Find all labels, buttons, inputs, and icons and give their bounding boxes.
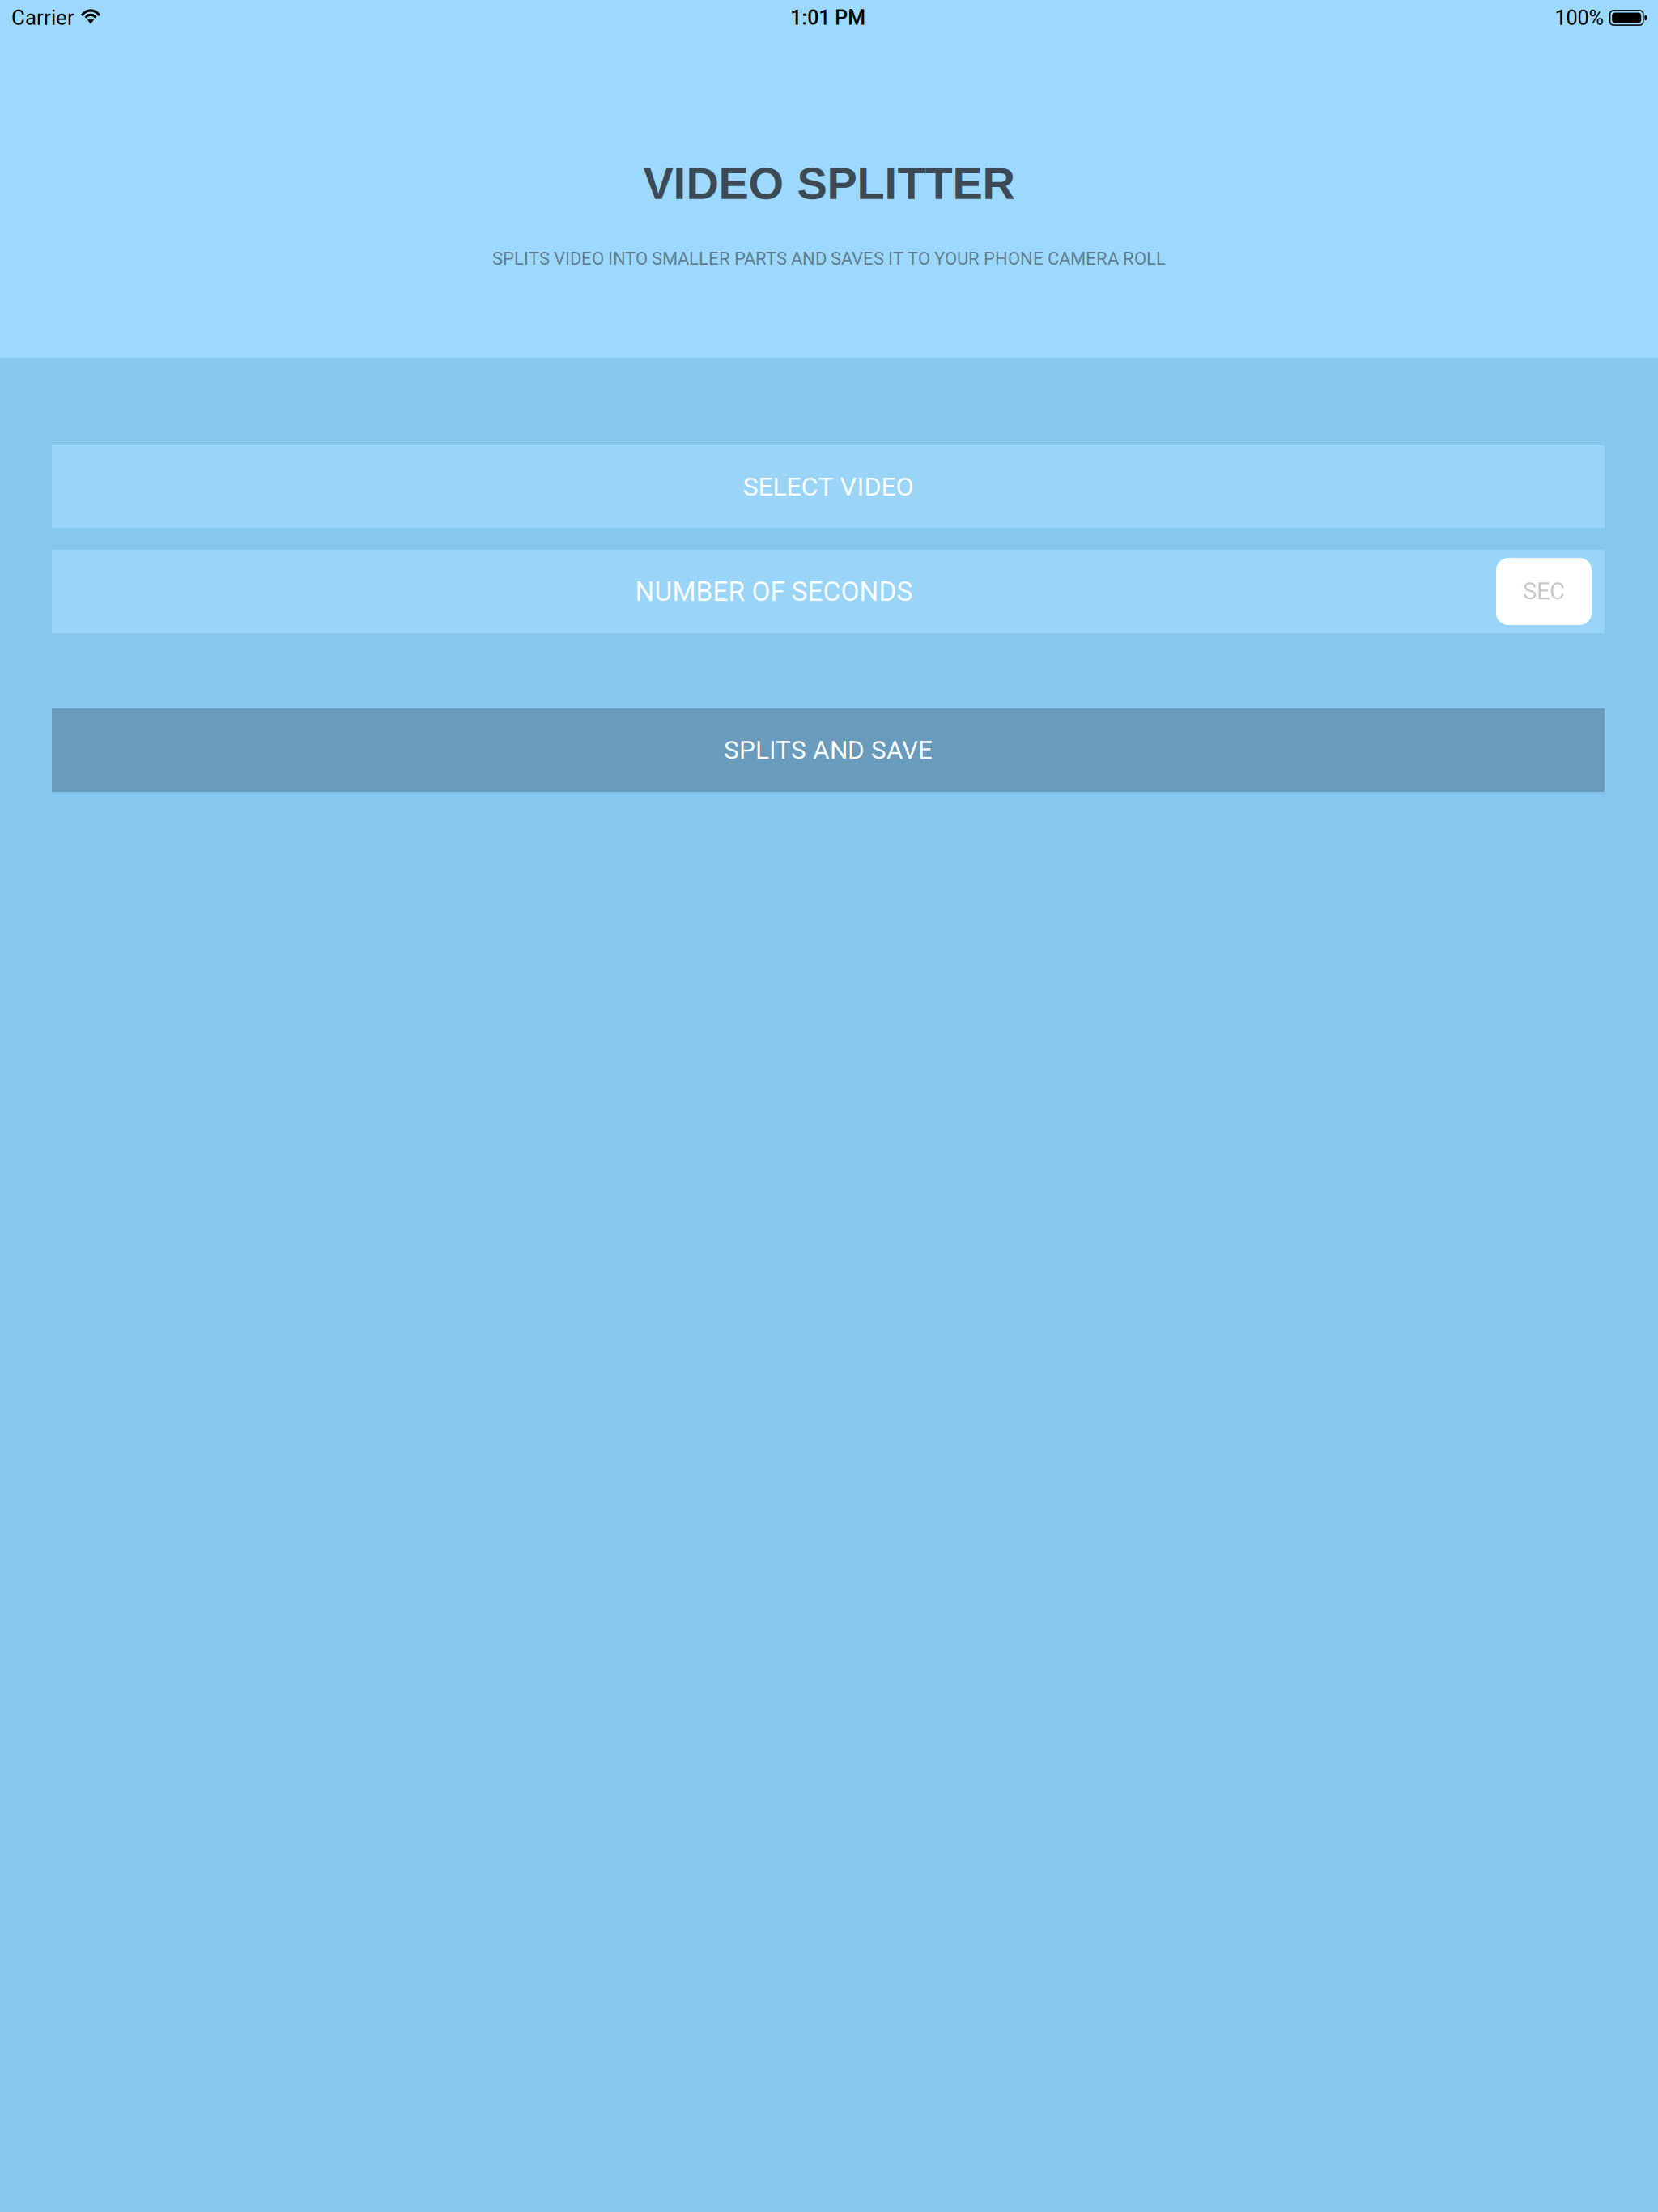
staticText: VIDEO SPLITTER: [643, 158, 1015, 209]
button[interactable]: SPLITS AND SAVE: [52, 708, 1605, 792]
staticText: SEC: [1523, 578, 1565, 605]
staticText: Carrier: [11, 6, 74, 30]
staticText: 1:01 PM: [790, 6, 866, 30]
staticText: SELECT VIDEO: [743, 471, 914, 502]
button[interactable]: SELECT VIDEO: [52, 445, 1605, 528]
staticText: 100%: [1555, 6, 1604, 30]
staticText: SPLITS VIDEO INTO SMALLER PARTS AND SAVE…: [492, 248, 1166, 269]
staticText: SPLITS AND SAVE: [724, 735, 933, 765]
staticText: NUMBER OF SECONDS: [635, 576, 913, 607]
button[interactable]: NUMBER OF SECONDS: [52, 550, 1605, 633]
